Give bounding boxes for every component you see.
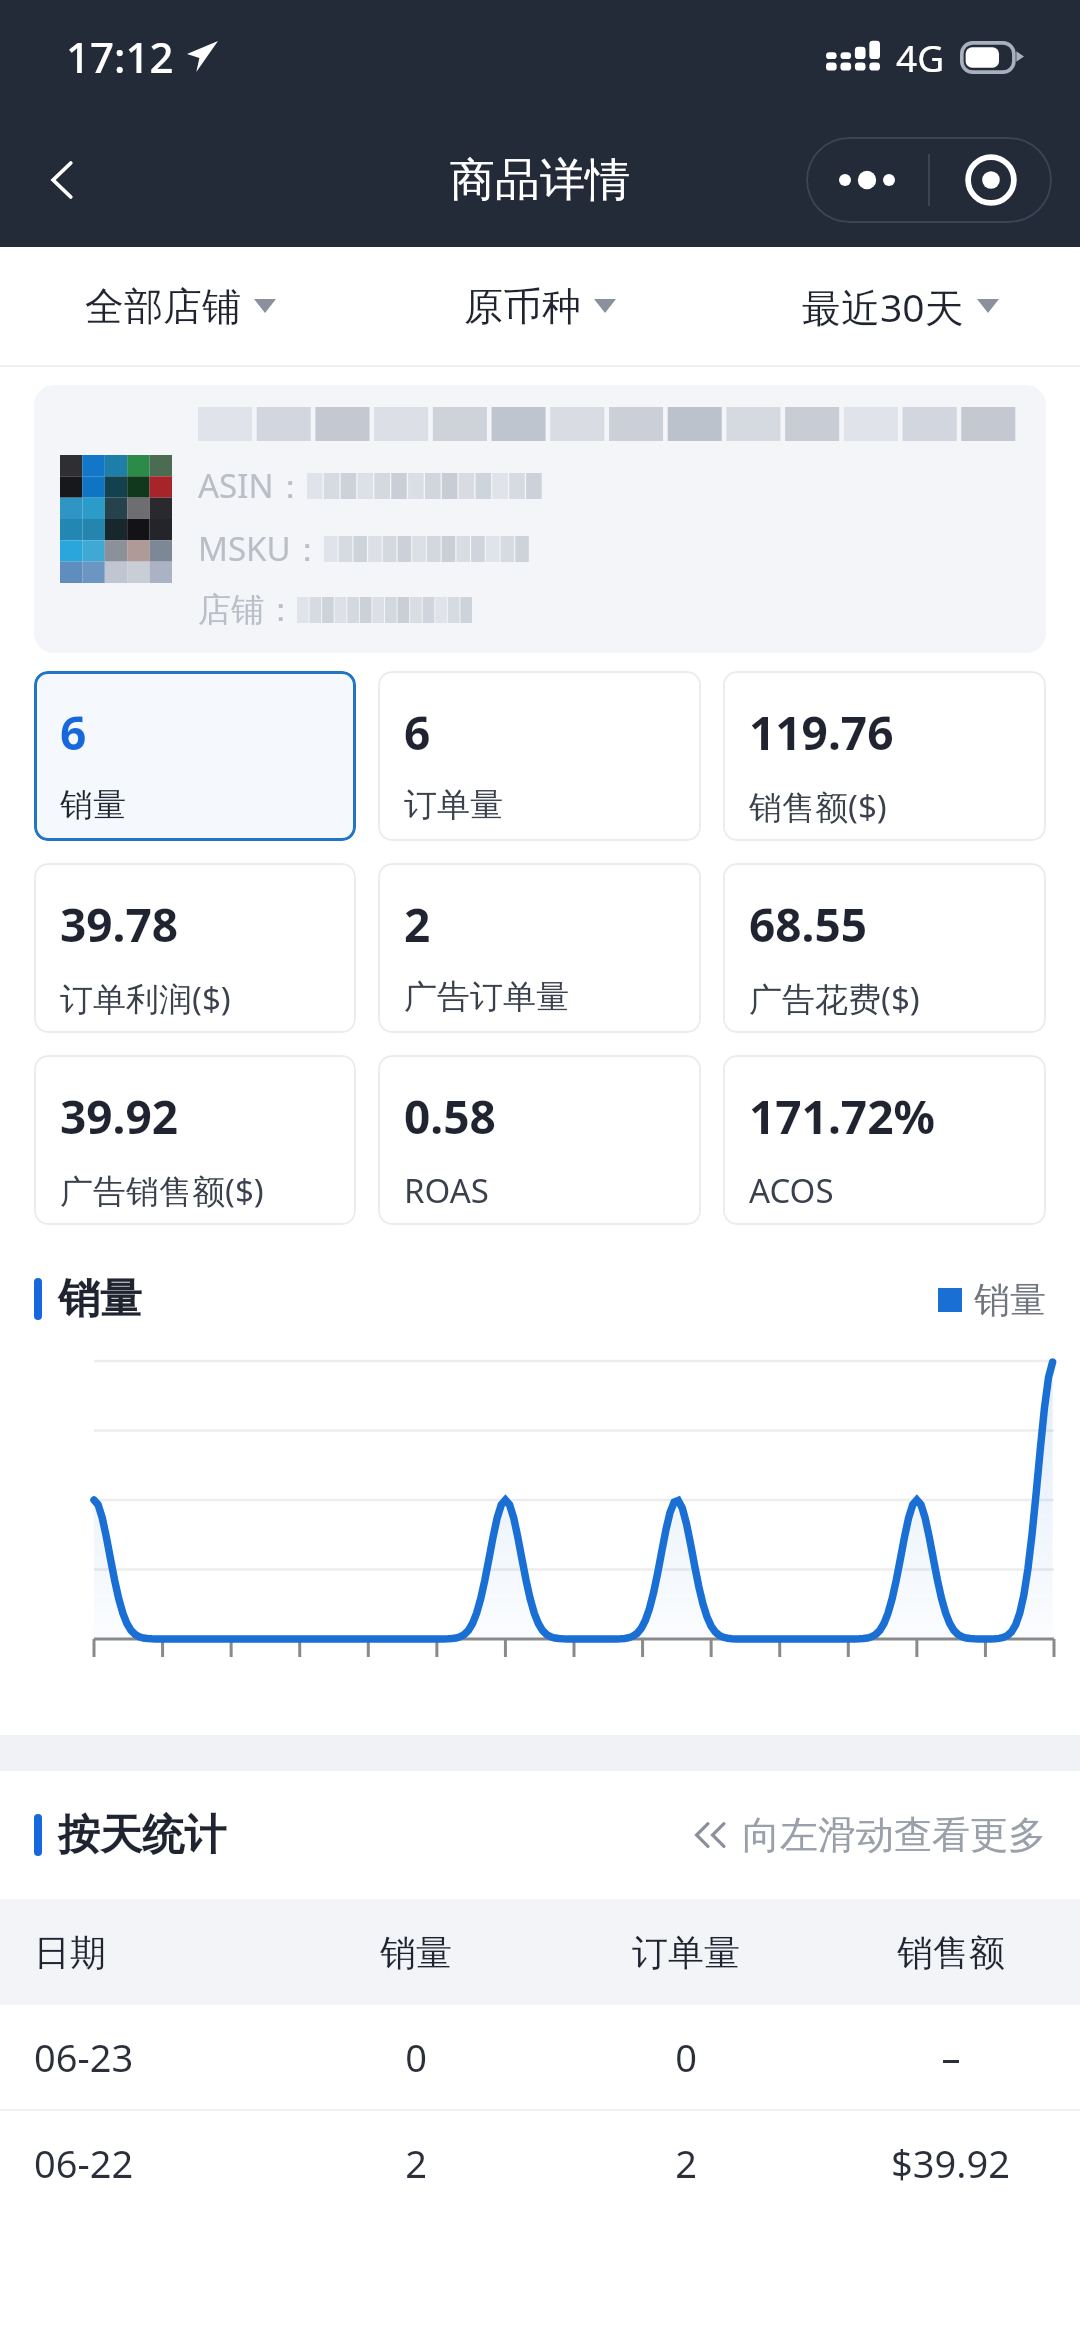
button[interactable]: Back (26, 142, 102, 218)
staticText: 广告花费($) (749, 976, 920, 1021)
staticText: 订单量 (404, 784, 503, 826)
staticText: 店铺： (198, 589, 297, 631)
staticText: 6 (404, 701, 431, 764)
staticText: 商品详情 (450, 152, 630, 209)
button[interactable]: 119.76 (723, 671, 1046, 841)
button[interactable]: 0.58 (378, 1055, 701, 1225)
staticText: 39.92 (60, 1085, 179, 1148)
button[interactable]: 2 (378, 863, 701, 1033)
staticText: 06-23 (34, 2031, 134, 2083)
staticText: 原币种 (464, 282, 581, 331)
staticText: 06-22 (34, 2137, 134, 2189)
staticText: 17:12 (66, 28, 174, 85)
staticText: 2 (675, 2137, 697, 2189)
staticText: 销量 (60, 784, 126, 826)
staticText: 0.58 (404, 1085, 496, 1148)
staticText: 广告订单量 (404, 976, 569, 1018)
staticText: 销售额 (897, 1930, 1005, 1975)
staticText: 向左滑动查看更多 (742, 1811, 1046, 1859)
button[interactable]: 原币种 (360, 247, 720, 365)
staticText: – (941, 2031, 961, 2083)
staticText: 销量 (974, 1277, 1046, 1322)
staticText: 2 (405, 2137, 427, 2189)
staticText: 最近30天 (802, 280, 964, 333)
staticText: 6 (60, 701, 87, 764)
staticText: 按天统计 (58, 1809, 226, 1862)
staticText: 销售额($) (749, 784, 887, 829)
staticText: 订单量 (632, 1930, 740, 1975)
button[interactable]: Close mini program (930, 137, 1052, 223)
button[interactable]: 销量 (938, 1277, 1046, 1322)
staticText: 171.72% (749, 1085, 935, 1148)
staticText: 0 (405, 2031, 427, 2083)
button[interactable]: ASIN： (34, 385, 1046, 653)
staticText: 订单利润($) (60, 976, 231, 1021)
staticText: MSKU： (198, 526, 324, 571)
staticText: 4G (896, 32, 945, 82)
staticText: 119.76 (749, 701, 894, 764)
staticText: $39.92 (891, 2137, 1010, 2189)
staticText: 销量 (58, 1273, 142, 1326)
button[interactable]: 06-23 (0, 2005, 1080, 2109)
staticText: 全部店铺 (85, 282, 241, 331)
button[interactable]: More (806, 137, 928, 223)
staticText: 销量 (380, 1930, 452, 1975)
button[interactable]: 39.78 (34, 863, 356, 1033)
staticText: 0 (675, 2031, 697, 2083)
staticText: ASIN： (198, 463, 307, 508)
button[interactable]: 6 (378, 671, 701, 841)
button[interactable]: 39.92 (34, 1055, 356, 1225)
button[interactable]: 6 (34, 671, 356, 841)
button[interactable]: 向左滑动查看更多 (692, 1811, 1046, 1859)
staticText: 68.55 (749, 893, 868, 956)
staticText: ROAS (404, 1168, 489, 1213)
button[interactable]: 06-22 (0, 2111, 1080, 2215)
button[interactable]: 最近30天 (720, 247, 1080, 365)
button[interactable]: 171.72% (723, 1055, 1046, 1225)
staticText: 广告销售额($) (60, 1168, 264, 1213)
button[interactable]: 全部店铺 (0, 247, 360, 365)
staticText: 39.78 (60, 893, 179, 956)
button[interactable]: 68.55 (723, 863, 1046, 1033)
staticText: 2 (404, 893, 431, 956)
staticText: ACOS (749, 1168, 834, 1213)
staticText: 日期 (34, 1930, 106, 1975)
